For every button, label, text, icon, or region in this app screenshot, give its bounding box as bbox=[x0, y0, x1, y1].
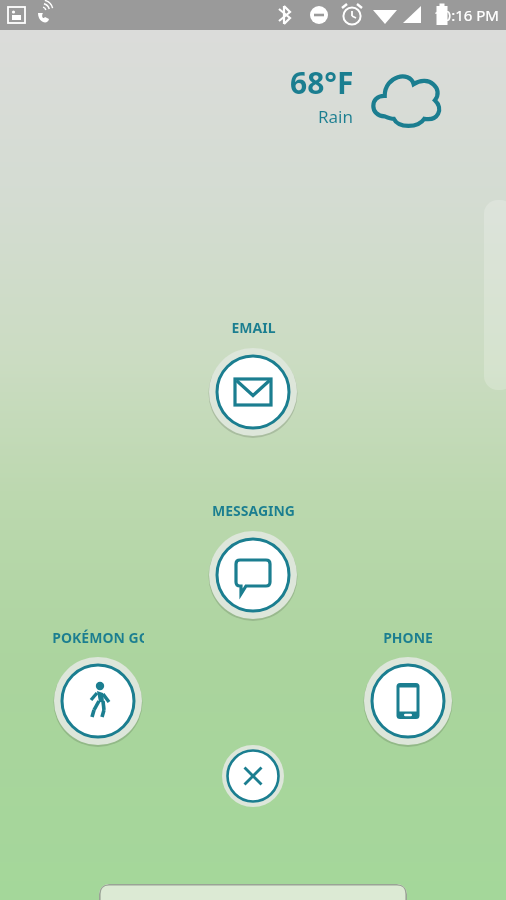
button[interactable]: MESSAGING bbox=[207, 529, 299, 621]
staticText: EMAIL bbox=[231, 318, 276, 337]
staticText: PHONE bbox=[383, 628, 433, 647]
button[interactable]: MESSAGING bbox=[207, 501, 299, 621]
button[interactable]: EMAIL bbox=[207, 318, 299, 438]
button[interactable]: POKÉMON GO bbox=[52, 628, 144, 747]
staticText: MESSAGING bbox=[212, 501, 295, 520]
button[interactable]: PHONE bbox=[362, 655, 454, 747]
button[interactable]: Close bbox=[217, 740, 289, 812]
staticText: POKÉMON GO bbox=[52, 628, 144, 647]
button[interactable] bbox=[99, 884, 407, 900]
button[interactable]: EMAIL bbox=[207, 346, 299, 438]
staticText: 68°F bbox=[290, 62, 354, 103]
staticText: Rain bbox=[318, 105, 354, 128]
button[interactable]: POKÉMON GO bbox=[52, 655, 144, 747]
button[interactable]: 68°F bbox=[290, 62, 444, 128]
button[interactable]: PHONE bbox=[362, 628, 454, 747]
button[interactable]: Open drawer bbox=[484, 200, 506, 390]
staticText: 10:16 PM bbox=[434, 5, 499, 25]
